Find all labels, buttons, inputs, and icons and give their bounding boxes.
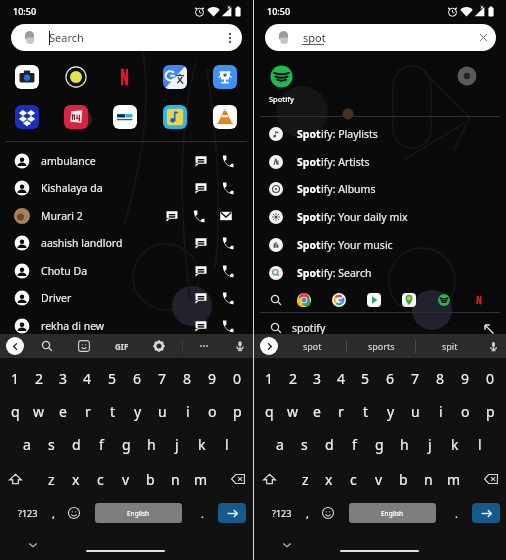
button[interactable]: f [89, 427, 114, 461]
button[interactable]: Spot [254, 120, 506, 148]
button[interactable]: t [353, 394, 378, 428]
button[interactable]: Insert suggestion [477, 317, 499, 339]
button[interactable]: 0 [478, 361, 503, 395]
button[interactable]: 0 [225, 361, 250, 395]
button[interactable]: Show toolbar [260, 337, 278, 355]
button[interactable]: Netflix [106, 58, 144, 96]
button[interactable]: 1 [257, 361, 281, 395]
button[interactable]: k [189, 427, 214, 461]
button[interactable]: English [95, 503, 182, 523]
button[interactable]: Spot [254, 231, 506, 259]
button[interactable]: MyApp [57, 98, 95, 136]
button[interactable]: Call Murari 2 [187, 203, 211, 229]
button[interactable]: ?123 [263, 498, 301, 528]
button[interactable]: Call ambulance [216, 148, 240, 174]
button[interactable]: Spotify [257, 62, 305, 110]
button[interactable]: Message Murari 2 [160, 203, 184, 229]
button[interactable]: 8 [175, 361, 200, 395]
button[interactable]: Files [156, 98, 194, 136]
button[interactable]: e [51, 394, 75, 428]
button[interactable]: 5 [100, 361, 125, 395]
button[interactable]: Shift [254, 462, 284, 496]
button[interactable]: Enter [218, 503, 246, 523]
button[interactable]: z [39, 462, 63, 496]
button[interactable]: . [191, 498, 213, 528]
button[interactable]: q [3, 394, 27, 428]
button[interactable]: ambulance [0, 147, 253, 175]
button[interactable]: 1 [3, 361, 27, 395]
button[interactable]: f [342, 427, 367, 461]
button[interactable]: spot [278, 334, 346, 358]
button[interactable]: Backspace [476, 462, 506, 496]
button[interactable]: c [341, 462, 366, 496]
button[interactable]: 5 [353, 361, 378, 395]
button[interactable]: VLC [206, 98, 244, 136]
button[interactable]: Message Driver [189, 285, 213, 311]
button[interactable]: Stickers [73, 335, 95, 357]
button[interactable]: b [138, 462, 163, 496]
button[interactable]: Search the web [264, 288, 288, 312]
button[interactable]: d [317, 427, 342, 461]
button[interactable]: y [125, 394, 150, 428]
button[interactable]: x [317, 462, 341, 496]
button[interactable]: . [445, 498, 467, 528]
button[interactable]: y [378, 394, 403, 428]
button[interactable]: Chotu Da [0, 257, 253, 285]
button[interactable]: Dropbox [8, 98, 46, 136]
button[interactable]: aashish landlord [0, 229, 253, 257]
button[interactable]: p [478, 394, 503, 428]
button[interactable]: Snapseed [57, 58, 95, 96]
button[interactable]: Spot [254, 203, 506, 231]
button[interactable]: b [391, 462, 416, 496]
button[interactable]: Murari 2 [0, 202, 253, 230]
button[interactable]: n [416, 462, 441, 496]
button[interactable]: a [268, 427, 292, 461]
button[interactable]: Call Chotu Da [216, 258, 240, 284]
button[interactable]: z [293, 462, 317, 496]
button[interactable]: English [349, 503, 436, 523]
button[interactable]: Netflix [467, 288, 491, 312]
button[interactable]: g [367, 427, 392, 461]
button[interactable]: i [175, 394, 200, 428]
button[interactable]: Spot [254, 259, 506, 287]
button[interactable]: k [442, 427, 467, 461]
button[interactable]: Call Driver [216, 285, 240, 311]
button[interactable]: 2 [281, 361, 305, 395]
button[interactable]: l [214, 427, 239, 461]
button[interactable]: Hide keyboard [23, 535, 43, 555]
button[interactable]: Play Games [206, 58, 244, 96]
button[interactable]: Message Kishalaya da [189, 175, 213, 201]
button[interactable]: s [292, 427, 317, 461]
button[interactable]: h [139, 427, 164, 461]
button[interactable]: j [417, 427, 442, 461]
button[interactable]: Driver [0, 284, 253, 312]
button[interactable]: 7 [403, 361, 428, 395]
button[interactable]: Email Murari 2 [214, 203, 238, 229]
button[interactable]: 3 [51, 361, 75, 395]
button[interactable]: 7 [150, 361, 175, 395]
button[interactable]: More options [218, 24, 242, 51]
button[interactable]: , [296, 498, 318, 528]
button[interactable]: ?123 [9, 498, 47, 528]
button[interactable]: 8 [428, 361, 453, 395]
button[interactable]: n [163, 462, 188, 496]
button[interactable]: sports [347, 334, 415, 358]
button[interactable]: Spotify [432, 288, 456, 312]
button[interactable]: Call Kishalaya da [216, 175, 240, 201]
button[interactable]: g [114, 427, 139, 461]
button[interactable]: t [100, 394, 125, 428]
button[interactable]: 4 [329, 361, 353, 395]
button[interactable]: More [193, 335, 215, 357]
button[interactable]: Hide keyboard [277, 535, 297, 555]
button[interactable]: c [88, 462, 113, 496]
button[interactable]: m [441, 462, 466, 496]
button[interactable]: Voice input [229, 335, 251, 357]
button[interactable]: 2 [27, 361, 51, 395]
button[interactable]: Shift [0, 462, 30, 496]
button[interactable]: Backspace [223, 462, 253, 496]
button[interactable]: Emoji [316, 498, 340, 528]
button[interactable]: Message rekha di new [189, 313, 213, 339]
button[interactable]: x [63, 462, 88, 496]
button[interactable]: 6 [125, 361, 150, 395]
button[interactable]: Call rekha di new [216, 313, 240, 339]
